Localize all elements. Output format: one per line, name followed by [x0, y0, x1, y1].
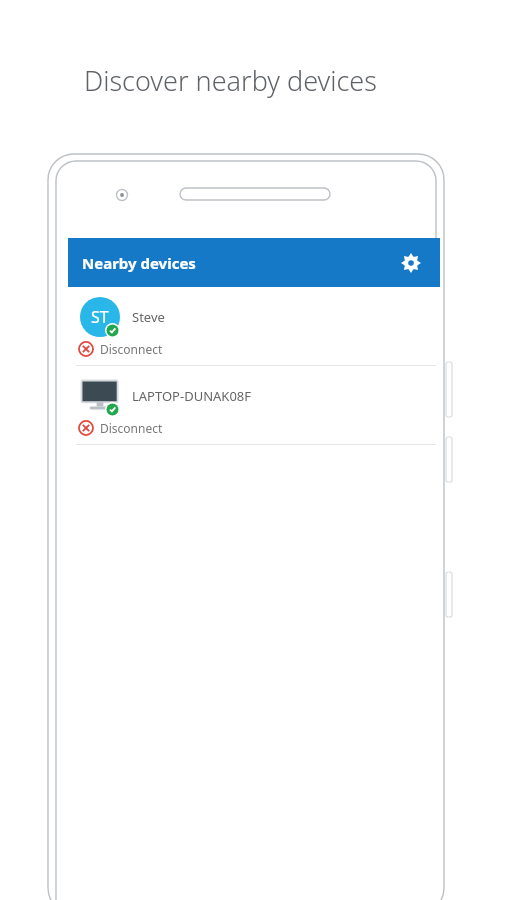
staticText: Discover nearby devices	[84, 62, 377, 99]
staticText: Nearby devices	[82, 253, 196, 273]
staticText: Steve	[132, 308, 165, 326]
button[interactable]: Settings	[396, 248, 426, 278]
button[interactable]: Nearby devices	[68, 238, 440, 287]
staticText: ST	[91, 306, 109, 328]
button[interactable]: LAPTOP-DUNAK08F	[68, 366, 440, 444]
button[interactable]: ST	[68, 287, 440, 365]
staticText: Disconnect	[100, 341, 163, 357]
staticText: Disconnect	[100, 420, 163, 436]
button[interactable]: Disconnect	[78, 420, 163, 436]
button[interactable]: Disconnect	[78, 341, 163, 357]
staticText: LAPTOP-DUNAK08F	[132, 387, 252, 405]
